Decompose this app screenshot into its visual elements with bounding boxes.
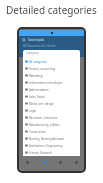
staticText: Information technologies — [29, 81, 63, 85]
staticText: Finance, accounting — [29, 67, 56, 71]
button[interactable]: Legal — [23, 107, 80, 114]
button[interactable]: Nursing, Nursing Assistant — [23, 135, 80, 142]
button[interactable]: Home — [19, 157, 36, 171]
button[interactable]: Jobs — [36, 157, 52, 171]
staticText: Search jobs — [28, 38, 45, 42]
button[interactable]: Media, arts, design — [23, 100, 80, 107]
staticText: Marketing — [29, 74, 43, 78]
staticText: All Recommended Recent — [23, 44, 56, 48]
staticText: Education, instruction — [29, 116, 58, 120]
staticText: Administration — [29, 88, 49, 92]
staticText: Legal — [29, 109, 37, 113]
button[interactable]: Science, Research — [23, 149, 80, 156]
button[interactable]: Information technologies — [23, 79, 80, 86]
staticText: Detailed categories — [6, 3, 97, 17]
staticText: Manufacturing, utilities — [29, 123, 60, 127]
button[interactable]: All categories — [23, 58, 80, 65]
staticText: Science, Research — [29, 151, 53, 155]
staticText: Media, arts, design — [29, 102, 54, 106]
staticText: Architecture, Engineering — [29, 144, 63, 148]
button[interactable]: Administration — [23, 86, 80, 93]
button[interactable]: Saved — [52, 157, 68, 171]
button[interactable]: Architecture, Engineering — [23, 142, 80, 149]
button[interactable]: Profile — [68, 157, 84, 171]
button[interactable]: Sales, Retail — [23, 93, 80, 100]
staticText: Category — [26, 51, 39, 55]
button[interactable]: Education, instruction — [23, 114, 80, 121]
staticText: All categories — [29, 60, 47, 64]
staticText: Sales, Retail — [29, 95, 45, 99]
button[interactable]: Marketing — [23, 72, 80, 79]
staticText: Construction — [29, 130, 46, 134]
button[interactable]: Construction — [23, 128, 80, 135]
button[interactable]: Manufacturing, utilities — [23, 121, 80, 128]
button[interactable]: Finance, accounting — [23, 65, 80, 72]
staticText: Nursing, Nursing Assistant — [29, 137, 65, 141]
